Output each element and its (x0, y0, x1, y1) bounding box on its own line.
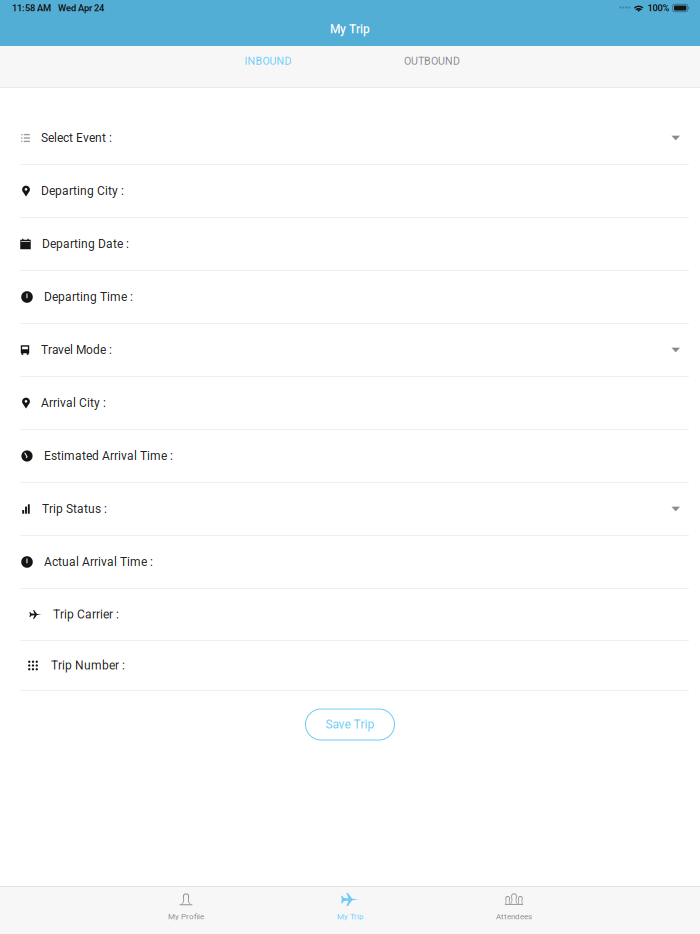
staticText: OUTBOUND (404, 55, 460, 67)
button[interactable]: Travel Mode : (0, 324, 700, 377)
button[interactable]: Attendees (432, 887, 596, 934)
staticText: My Trip (330, 22, 370, 36)
staticText: Attendees (496, 912, 532, 921)
button[interactable]: My Trip (268, 887, 432, 934)
button[interactable]: INBOUND (186, 46, 350, 87)
staticText: 11:58 AM (12, 3, 51, 13)
button[interactable]: Departing Time : (0, 271, 700, 324)
staticText: My Profile (168, 912, 204, 921)
staticText: Departing Time : (44, 290, 133, 304)
button[interactable]: Departing Date : (0, 218, 700, 271)
button[interactable]: Trip Status : (0, 483, 700, 536)
staticText: Travel Mode : (41, 343, 112, 357)
staticText: Departing Date : (42, 237, 129, 251)
staticText: Actual Arrival Time : (44, 555, 153, 569)
staticText: Trip Number : (51, 659, 125, 672)
staticText: Trip Carrier : (53, 608, 119, 621)
staticText: Departing City : (41, 184, 124, 198)
button[interactable]: Select Event : (0, 112, 700, 165)
button[interactable]: Actual Arrival Time : (0, 536, 700, 589)
staticText: INBOUND (244, 55, 291, 67)
staticText: Select Event : (41, 131, 112, 145)
staticText: Trip Status : (42, 502, 107, 516)
button[interactable]: Estimated Arrival Time : (0, 430, 700, 483)
button[interactable]: Departing City : (0, 165, 700, 218)
button[interactable]: Trip Number : (0, 641, 700, 691)
staticText: My Trip (337, 912, 363, 921)
button[interactable]: OUTBOUND (350, 46, 514, 87)
button[interactable]: My Profile (104, 887, 268, 934)
button[interactable]: Trip Carrier : (0, 589, 700, 641)
button[interactable]: Save Trip (305, 709, 394, 740)
staticText: 100% (648, 3, 670, 13)
staticText: Wed Apr 24 (58, 3, 104, 13)
staticText: Save Trip (325, 718, 374, 731)
staticText: Estimated Arrival Time : (44, 449, 173, 463)
button[interactable]: Arrival City : (0, 377, 700, 430)
staticText: Arrival City : (41, 396, 106, 410)
